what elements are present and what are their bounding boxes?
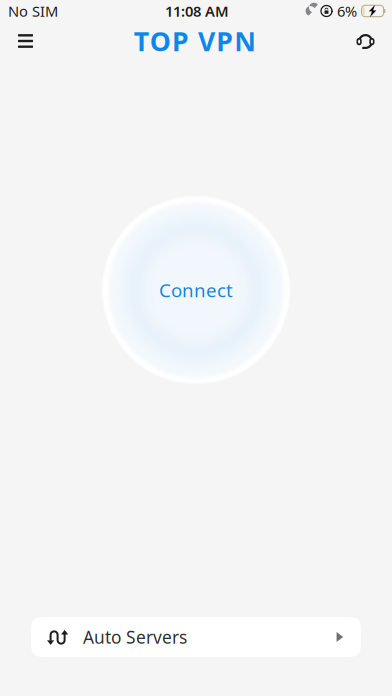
staticText: Auto Servers — [83, 625, 187, 648]
staticText: No SIM — [8, 1, 58, 21]
staticText: Connect — [159, 278, 233, 302]
button[interactable]: Connect — [101, 195, 291, 385]
button[interactable]: Menu — [0, 24, 47, 58]
staticText: 11:08 AM — [165, 1, 229, 21]
button[interactable]: Auto Servers — [31, 617, 361, 657]
staticText: 6% — [337, 1, 357, 21]
button[interactable]: Support — [343, 23, 392, 59]
staticText: TOP VPN — [134, 23, 256, 59]
